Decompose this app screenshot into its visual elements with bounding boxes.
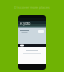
- staticText: Kyoto: [20, 21, 30, 26]
- staticText: Discover more places: [14, 5, 50, 10]
